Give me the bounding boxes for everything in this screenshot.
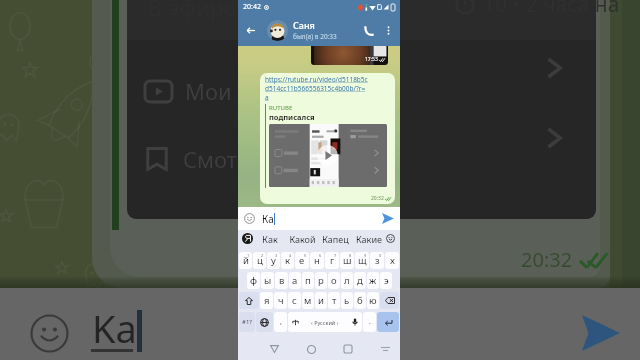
button[interactable]: о — [328, 272, 340, 289]
staticText: щ — [358, 254, 367, 267]
button[interactable]: ‹ Русский › — [288, 312, 362, 332]
button[interactable]: Какой — [286, 233, 319, 245]
button[interactable]: д — [354, 272, 366, 289]
button[interactable]: б — [354, 292, 366, 309]
staticText: б — [357, 294, 363, 307]
button[interactable]: ы — [261, 272, 274, 289]
button[interactable]: Как — [253, 233, 286, 245]
button[interactable]: я — [260, 292, 273, 309]
button[interactable]: More options — [381, 23, 395, 37]
button[interactable]: ж — [367, 272, 379, 289]
staticText: ж — [369, 274, 377, 287]
button[interactable]: , — [274, 312, 287, 332]
staticText: 20:32 — [371, 195, 384, 202]
button[interactable]: л — [341, 272, 353, 289]
staticText: е — [299, 254, 305, 267]
staticText: . — [369, 317, 371, 327]
staticText: л — [344, 274, 350, 287]
button[interactable]: Play video — [317, 145, 338, 166]
button[interactable]: й — [239, 252, 252, 269]
button[interactable]: Backspace — [380, 292, 399, 309]
button[interactable]: з — [370, 252, 384, 269]
staticText: ы — [264, 274, 272, 287]
staticText: п — [305, 274, 311, 287]
button[interactable]: Какие — [352, 233, 385, 245]
staticText: 10 • 2 часа на — [483, 0, 620, 19]
button[interactable]: в — [275, 272, 288, 289]
staticText: Смот — [183, 144, 238, 174]
button[interactable]: у — [267, 252, 280, 269]
button[interactable]: . — [363, 312, 376, 332]
staticText: 9 — [364, 253, 367, 258]
button[interactable]: п — [302, 272, 314, 289]
button[interactable]: ф — [247, 272, 260, 289]
staticText: Ка — [262, 212, 274, 226]
button[interactable]: Change language — [256, 312, 273, 332]
button[interactable]: г — [325, 252, 339, 269]
button[interactable]: с — [288, 292, 301, 309]
button[interactable]: к — [281, 252, 294, 269]
button[interactable]: Home — [303, 341, 319, 357]
staticText: 4 — [289, 253, 292, 258]
staticText: RUTUBE — [269, 104, 293, 112]
button[interactable]: ш — [340, 252, 354, 269]
button[interactable]: ц — [253, 252, 266, 269]
button[interactable]: х — [385, 252, 399, 269]
button[interactable]: ь — [341, 292, 353, 309]
button[interactable]: ю — [367, 292, 379, 309]
button[interactable]: Back — [266, 341, 282, 357]
staticText: к — [285, 254, 291, 267]
button[interactable]: Shift — [239, 292, 259, 309]
button[interactable]: а — [289, 272, 301, 289]
button[interactable]: Send — [380, 211, 395, 226]
staticText: был(а) в 20:33 — [293, 32, 337, 41]
button[interactable]: Recent apps — [340, 341, 356, 357]
staticText: 20:32 — [521, 246, 573, 273]
staticText: Капец — [322, 233, 349, 245]
staticText: 0 — [379, 253, 382, 258]
staticText: Саня — [293, 19, 315, 31]
staticText: 1 — [247, 253, 250, 258]
button[interactable]: Call — [361, 22, 378, 39]
button[interactable]: Emoji suggestions — [385, 233, 396, 244]
staticText: 6 — [319, 253, 322, 258]
staticText: в — [279, 274, 285, 287]
staticText: й — [243, 254, 249, 267]
button[interactable]: э — [380, 272, 392, 289]
staticText: т — [332, 294, 337, 307]
staticText: ш — [343, 254, 352, 267]
staticText: о — [331, 274, 337, 287]
staticText: d514cc11b566556315c4b00b/?r= — [265, 84, 366, 93]
staticText: д — [357, 274, 363, 287]
button[interactable]: р — [315, 272, 327, 289]
button[interactable]: Hide keyboard — [377, 341, 393, 357]
button[interactable]: т — [328, 292, 340, 309]
staticText: , — [280, 317, 282, 327]
button[interactable]: Enter — [377, 312, 399, 332]
staticText: ‹ Русский › — [311, 319, 339, 326]
button[interactable]: Back — [243, 23, 257, 37]
staticText: у — [271, 254, 276, 267]
staticText: Как — [262, 233, 278, 245]
staticText: https://rutube.ru/video/d5118b5c — [265, 75, 368, 84]
staticText: a — [265, 93, 269, 102]
button[interactable]: щ — [355, 252, 369, 269]
button[interactable]: н — [310, 252, 324, 269]
button[interactable]: и — [315, 292, 327, 309]
staticText: 2 — [261, 253, 264, 258]
button[interactable]: ч — [274, 292, 287, 309]
staticText: 7 — [334, 253, 337, 258]
button[interactable]: #1? — [239, 312, 255, 332]
button[interactable]: Emoji — [243, 212, 256, 225]
staticText: ц — [257, 254, 263, 267]
staticText: подписался — [269, 112, 315, 122]
button[interactable]: е — [295, 252, 309, 269]
staticText: 8 — [349, 253, 352, 258]
staticText: х — [390, 254, 395, 267]
staticText: э — [384, 274, 389, 287]
button[interactable]: Капец — [319, 233, 352, 245]
staticText: г — [330, 254, 335, 267]
button[interactable]: м — [302, 292, 314, 309]
button[interactable]: Yandex assistant — [242, 233, 253, 244]
